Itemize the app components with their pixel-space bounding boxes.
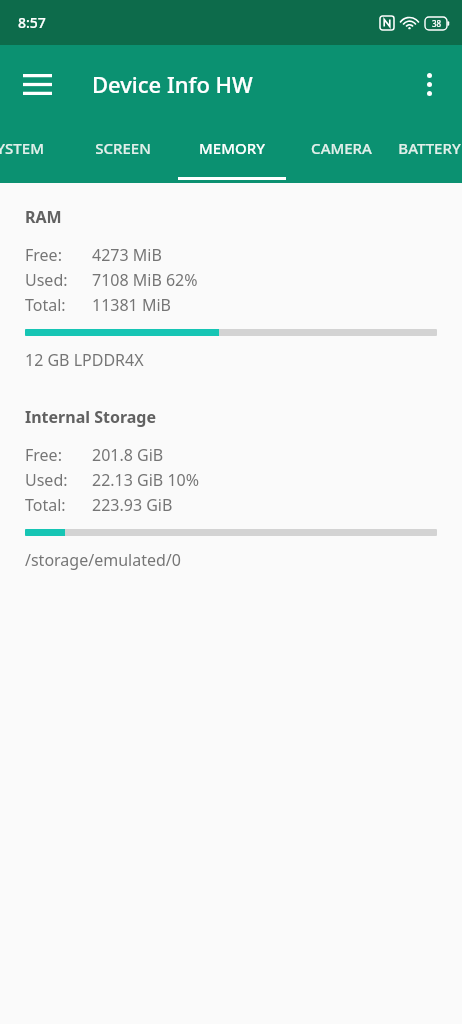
button[interactable]: SCREEN: [68, 123, 178, 183]
staticText: Total:: [25, 494, 92, 516]
staticText: Used:: [25, 469, 92, 491]
staticText: 8:57: [18, 13, 46, 32]
staticText: 201.8 GiB: [92, 444, 164, 466]
staticText: Total:: [25, 294, 92, 316]
staticText: 4273 MiB: [92, 244, 162, 266]
button[interactable]: SYSTEM: [0, 123, 68, 183]
button[interactable]: BATTERY: [396, 123, 462, 183]
button[interactable]: MEMORY: [178, 123, 286, 183]
staticText: Free:: [25, 244, 92, 266]
button[interactable]: Open navigation menu: [14, 61, 60, 107]
staticText: CAMERA: [311, 138, 372, 158]
staticText: Free:: [25, 444, 92, 466]
staticText: 38: [432, 18, 442, 29]
staticText: MEMORY: [199, 138, 265, 158]
staticText: Internal Storage: [25, 406, 157, 428]
staticText: Device Info HW: [92, 69, 253, 99]
staticText: RAM: [25, 206, 62, 228]
button[interactable]: More options: [406, 61, 452, 107]
staticText: 12 GB LPDDR4X: [25, 349, 144, 371]
staticText: /storage/emulated/0: [25, 549, 181, 571]
staticText: Used:: [25, 269, 92, 291]
staticText: SYSTEM: [0, 138, 44, 158]
staticText: SCREEN: [95, 138, 151, 158]
button[interactable]: CAMERA: [286, 123, 396, 183]
staticText: 11381 MiB: [92, 294, 171, 316]
staticText: BATTERY: [398, 138, 461, 158]
staticText: 22.13 GiB 10%: [92, 469, 199, 491]
staticText: 223.93 GiB: [92, 494, 173, 516]
staticText: 7108 MiB 62%: [92, 269, 198, 291]
